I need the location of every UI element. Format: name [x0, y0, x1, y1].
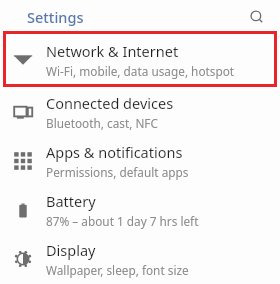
staticText: Bluetooth, cast, NFC [46, 115, 158, 131]
staticText: Battery [46, 191, 96, 211]
button[interactable]: Connected devices [0, 87, 280, 136]
staticText: Display [46, 240, 96, 260]
staticText: Connected devices [46, 93, 174, 113]
staticText: Settings [27, 7, 84, 27]
staticText: Wallpaper, sleep, font size [46, 262, 189, 278]
staticText: Network & Internet [46, 41, 179, 61]
button[interactable]: Search settings [245, 5, 269, 29]
staticText: Apps & notifications [46, 142, 183, 162]
button[interactable]: Apps & notifications [0, 136, 280, 185]
button[interactable]: Battery [0, 185, 280, 234]
staticText: Wi-Fi, mobile, data usage, hotspot [46, 63, 235, 79]
button[interactable]: Display [0, 234, 280, 283]
staticText: 87% – about 1 day 7 hrs left [46, 213, 199, 229]
staticText: Permissions, default apps [46, 164, 189, 180]
button[interactable]: Network & Internet [0, 33, 280, 87]
